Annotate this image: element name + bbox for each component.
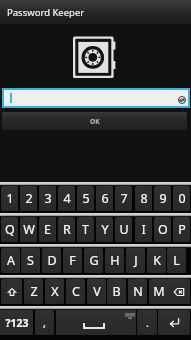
staticText: U — [119, 221, 129, 238]
staticText: 5 — [82, 190, 90, 207]
button[interactable]: J — [126, 248, 145, 273]
staticText: 6 — [101, 190, 109, 207]
button[interactable]: . — [137, 310, 157, 335]
button[interactable]: V — [87, 279, 106, 304]
button[interactable]: A — [1, 248, 20, 273]
button[interactable]: , — [35, 310, 54, 335]
staticText: 0 — [178, 190, 186, 207]
button[interactable]: 1 — [1, 186, 18, 211]
button[interactable]: B — [107, 279, 126, 304]
staticText: I — [141, 221, 146, 238]
button[interactable]: Y — [96, 217, 113, 242]
staticText: O — [158, 221, 168, 238]
staticText: T — [82, 221, 89, 238]
button[interactable]: 0 — [173, 186, 190, 211]
staticText: 3 — [44, 190, 52, 207]
button[interactable]: Shift — [1, 279, 22, 304]
staticText: 4 — [63, 190, 71, 207]
button[interactable]: S — [21, 248, 40, 273]
button[interactable]: ?123 — [0, 310, 33, 335]
button[interactable]: Space — [56, 310, 136, 335]
staticText: B — [112, 283, 121, 300]
button[interactable]: 2 — [20, 186, 37, 211]
button[interactable]: 7 — [115, 186, 132, 211]
button[interactable]: W — [20, 217, 37, 242]
staticText: W — [23, 221, 35, 238]
staticText: K — [153, 252, 161, 269]
button[interactable]: 5 — [77, 186, 94, 211]
staticText: L — [173, 252, 180, 269]
staticText: D — [47, 252, 57, 269]
button[interactable]: D — [42, 248, 61, 273]
button[interactable]: 8 — [135, 186, 152, 211]
staticText: F — [69, 252, 76, 269]
button[interactable]: E — [39, 217, 56, 242]
button[interactable]: U — [115, 217, 132, 242]
staticText: 8 — [140, 190, 148, 207]
button[interactable]: P — [173, 217, 190, 242]
staticText: V — [93, 283, 101, 300]
staticText: R — [63, 221, 71, 238]
staticText: H — [110, 252, 120, 269]
staticText: Z — [30, 283, 38, 300]
staticText: Y — [101, 221, 109, 238]
staticText: , — [43, 315, 46, 330]
button[interactable]: T — [77, 217, 94, 242]
button[interactable]: Show password — [4, 90, 188, 106]
button[interactable]: F — [63, 248, 82, 273]
button[interactable]: Q — [1, 217, 18, 242]
staticText: S — [27, 252, 34, 269]
button[interactable]: Z — [24, 279, 43, 304]
staticText: Q — [5, 221, 15, 238]
button[interactable]: K — [147, 248, 166, 273]
staticText: 2 — [25, 190, 33, 207]
staticText: G — [89, 252, 99, 269]
staticText: E — [44, 221, 51, 238]
button[interactable]: I — [135, 217, 152, 242]
button[interactable]: OK — [2, 112, 187, 130]
staticText: A — [7, 252, 15, 269]
button[interactable]: Show password — [178, 96, 186, 104]
button[interactable]: 4 — [58, 186, 75, 211]
staticText: 7 — [120, 190, 128, 207]
staticText: Password Keeper — [7, 6, 85, 19]
staticText: ?123 — [5, 316, 29, 330]
staticText: J — [134, 252, 138, 269]
button[interactable]: Backspace — [167, 279, 190, 304]
staticText: . — [146, 315, 149, 330]
staticText: N — [133, 283, 143, 300]
staticText: 9 — [159, 190, 167, 207]
button[interactable]: R — [58, 217, 75, 242]
button[interactable]: Enter — [158, 310, 190, 335]
button[interactable]: 3 — [39, 186, 56, 211]
button[interactable]: 6 — [96, 186, 113, 211]
button[interactable]: O — [154, 217, 171, 242]
staticText: M — [153, 283, 165, 300]
button[interactable]: N — [128, 279, 147, 304]
staticText: X — [51, 283, 59, 300]
button[interactable]: 9 — [154, 186, 171, 211]
button[interactable]: C — [66, 279, 85, 304]
button[interactable]: H — [105, 248, 124, 273]
staticText: 1 — [6, 190, 14, 207]
button[interactable]: G — [84, 248, 103, 273]
staticText: P — [178, 221, 186, 238]
button[interactable]: M — [149, 279, 168, 304]
staticText: C — [72, 283, 80, 300]
button[interactable]: L — [167, 248, 186, 273]
button[interactable]: X — [45, 279, 64, 304]
staticText: OK — [90, 117, 100, 126]
